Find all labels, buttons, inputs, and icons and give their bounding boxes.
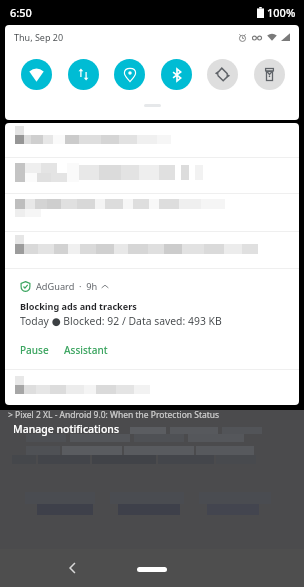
button[interactable]: [5, 232, 299, 268]
staticText: Blocking ads and trackers: [20, 300, 137, 312]
button[interactable]: Auto-rotate: [207, 59, 238, 90]
staticText: 100%: [267, 5, 296, 20]
staticText: Assistant: [64, 343, 108, 357]
button[interactable]: Back: [59, 555, 85, 581]
button[interactable]: Mobile data: [68, 59, 99, 90]
button[interactable]: Flashlight: [254, 59, 285, 90]
button[interactable]: Wi-Fi: [21, 59, 52, 90]
button[interactable]: [5, 370, 299, 405]
staticText: Thu, Sep 20: [14, 31, 64, 43]
button[interactable]: Assistant: [60, 341, 112, 359]
button[interactable]: Pause: [16, 341, 53, 359]
button[interactable]: [5, 194, 299, 231]
staticText: Today ● Blocked: 92 / Data saved: 493 KB: [20, 314, 222, 328]
button[interactable]: Home: [137, 567, 167, 572]
button[interactable]: Bluetooth: [161, 59, 192, 90]
staticText: AdGuard · 9h: [36, 280, 98, 293]
button[interactable]: Location: [114, 59, 145, 90]
button[interactable]: Manage notifications: [13, 422, 120, 436]
button[interactable]: AdGuard · 9h: [5, 269, 299, 369]
staticText: > Pixel 2 XL - Android 9.0: When the Pro…: [8, 409, 220, 421]
staticText: 6:50: [10, 5, 32, 20]
button[interactable]: [5, 158, 299, 193]
staticText: Pause: [20, 343, 49, 357]
button[interactable]: [5, 123, 299, 157]
